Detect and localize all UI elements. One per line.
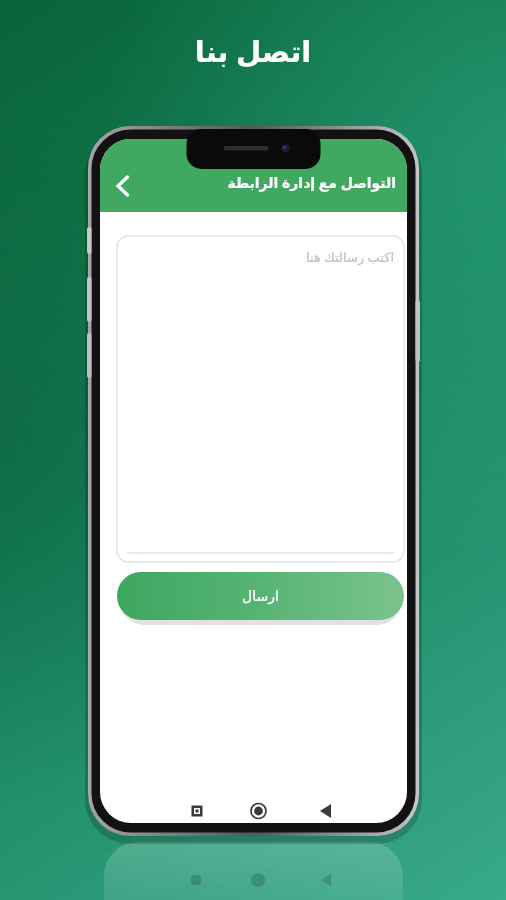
staticText: ارسال xyxy=(242,588,279,604)
button[interactable]: Home xyxy=(236,790,282,832)
button[interactable]: Back xyxy=(303,790,349,832)
staticText: التواصل مع إدارة الرابطة xyxy=(146,173,396,199)
staticText: اتصل بنا xyxy=(0,31,506,77)
button[interactable]: Recents xyxy=(174,790,220,832)
button[interactable]: Back xyxy=(104,166,144,206)
button[interactable]: اكتب رسالتك هنا xyxy=(117,236,404,562)
button[interactable]: التواصل مع إدارة الرابطة xyxy=(146,173,396,199)
staticText: اكتب رسالتك هنا xyxy=(127,248,394,270)
button[interactable]: ارسال xyxy=(117,572,404,620)
